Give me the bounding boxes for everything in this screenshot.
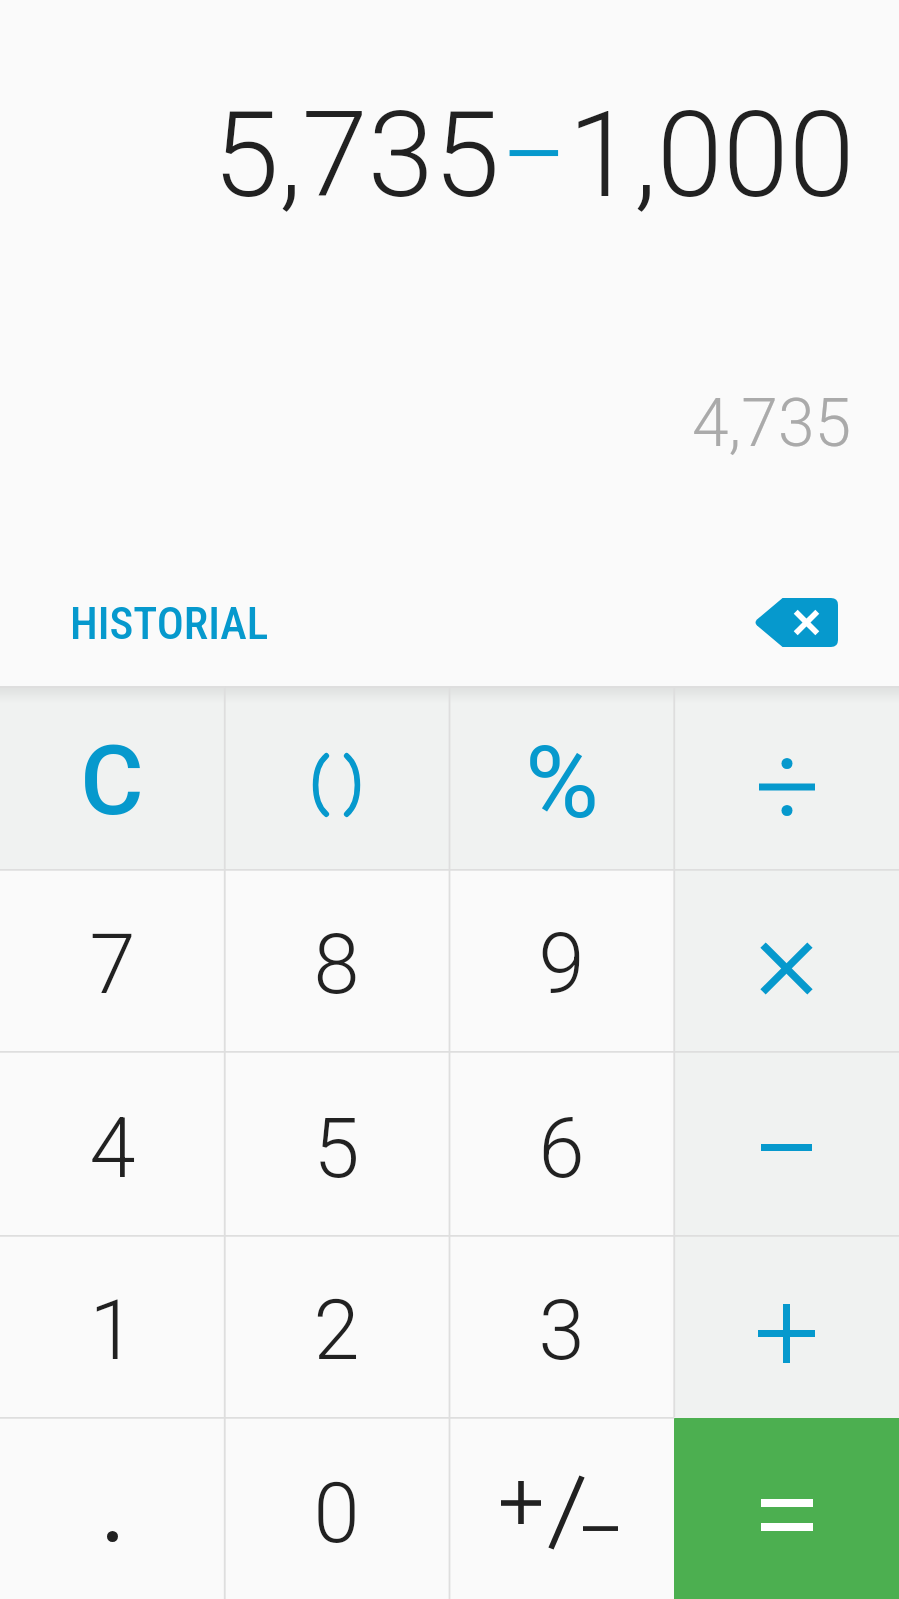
button[interactable]: 9 bbox=[449, 869, 674, 1052]
button[interactable]: Equals bbox=[674, 1418, 899, 1599]
staticText: 3 bbox=[538, 1282, 585, 1379]
button[interactable]: Subtract bbox=[674, 1052, 899, 1236]
button[interactable]: 7 bbox=[0, 869, 224, 1052]
staticText: HISTORIAL bbox=[70, 597, 269, 650]
button[interactable]: Add bbox=[674, 1236, 899, 1418]
staticText: 1 bbox=[89, 1282, 136, 1379]
staticText: − bbox=[500, 86, 568, 225]
staticText: 8 bbox=[313, 916, 360, 1013]
staticText: 2 bbox=[313, 1282, 360, 1379]
button[interactable]: 0 bbox=[224, 1418, 449, 1599]
button[interactable]: 2 bbox=[224, 1236, 449, 1418]
button[interactable]: 4 bbox=[0, 1052, 224, 1236]
staticText: 4 bbox=[89, 1100, 136, 1197]
button[interactable]: Parentheses bbox=[224, 686, 449, 869]
staticText: 5,735 bbox=[213, 86, 500, 225]
button[interactable]: 8 bbox=[224, 869, 449, 1052]
staticText: 4,735 bbox=[692, 385, 852, 462]
staticText: 6 bbox=[538, 1100, 585, 1197]
button[interactable]: 6 bbox=[449, 1052, 674, 1236]
staticText: C bbox=[80, 724, 144, 838]
button[interactable]: 1 bbox=[0, 1236, 224, 1418]
staticText: % bbox=[525, 723, 599, 841]
button[interactable]: Divide bbox=[674, 686, 899, 869]
button[interactable]: Backspace bbox=[734, 578, 858, 667]
button[interactable]: 5 bbox=[224, 1052, 449, 1236]
button[interactable]: Decimal point bbox=[0, 1418, 224, 1599]
staticText: 5 bbox=[313, 1100, 360, 1197]
button[interactable]: Percent bbox=[449, 686, 674, 869]
staticText: 7 bbox=[89, 916, 136, 1013]
staticText: 1,000 bbox=[568, 86, 855, 225]
button[interactable]: 3 bbox=[449, 1236, 674, 1418]
button[interactable]: Plus minus bbox=[449, 1418, 674, 1599]
button[interactable]: HISTORIAL bbox=[70, 597, 269, 650]
button[interactable]: Clear bbox=[0, 686, 224, 869]
staticText: 0 bbox=[313, 1465, 360, 1562]
button[interactable]: Multiply bbox=[674, 869, 899, 1052]
staticText: 9 bbox=[538, 916, 585, 1013]
